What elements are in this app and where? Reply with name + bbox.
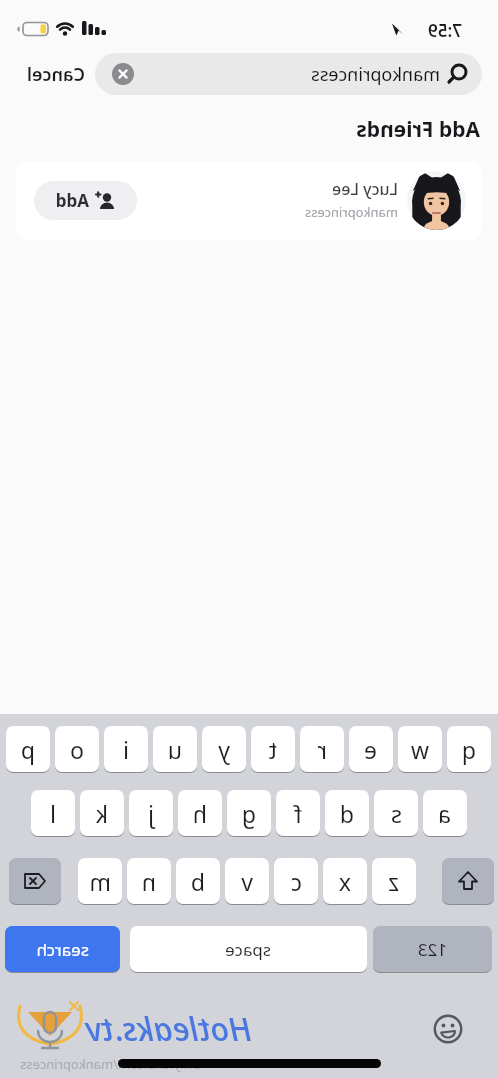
button[interactable]: l [31, 790, 75, 836]
staticText: 7:59 [428, 19, 462, 42]
button[interactable]: o [55, 726, 99, 772]
button[interactable]: Cancel [9, 58, 85, 90]
button[interactable]: n [127, 858, 171, 904]
button[interactable]: space [130, 926, 367, 972]
button[interactable]: search [5, 926, 120, 972]
staticText: Hotleaks.tv [85, 1006, 252, 1051]
button[interactable]: 123 [373, 926, 492, 972]
staticText: j [148, 798, 154, 829]
staticText: y [218, 734, 230, 765]
button[interactable]: w [398, 726, 442, 772]
button[interactable] [442, 858, 494, 904]
button[interactable]: m [78, 858, 122, 904]
staticText: Cancel [26, 62, 85, 87]
button[interactable] [9, 858, 61, 904]
button[interactable]: u [153, 726, 197, 772]
button[interactable]: mankoprincess [95, 53, 482, 95]
button[interactable]: b [176, 858, 220, 904]
button[interactable]: q [447, 726, 491, 772]
staticText: v [241, 866, 253, 897]
button[interactable]: e [349, 726, 393, 772]
staticText: u [167, 734, 182, 765]
staticText: mankoprincess [311, 62, 440, 87]
staticText: p [20, 734, 35, 765]
button[interactable]: r [300, 726, 344, 772]
button[interactable]: t [251, 726, 295, 772]
staticText: r [317, 734, 327, 765]
staticText: l [50, 798, 56, 829]
staticText: q [461, 734, 476, 765]
staticText: s [390, 798, 402, 829]
button[interactable]: Lucy Lee [16, 161, 482, 240]
staticText: h [192, 798, 207, 829]
staticText: k [95, 798, 108, 829]
staticText: x [338, 866, 351, 897]
button[interactable]: j [129, 790, 173, 836]
staticText: m [89, 866, 111, 897]
staticText: t [268, 734, 277, 765]
staticText: c [290, 866, 302, 897]
button[interactable]: y [202, 726, 246, 772]
staticText: Onlyfans.com/mankoprincess [20, 1055, 202, 1073]
button[interactable]: z [372, 858, 416, 904]
staticText: g [241, 798, 256, 829]
button[interactable]: a [423, 790, 467, 836]
button[interactable] [112, 63, 134, 85]
staticText: z [388, 866, 399, 897]
staticText: i [123, 734, 129, 765]
button[interactable]: v [225, 858, 269, 904]
staticText: w [410, 734, 429, 765]
staticText: o [70, 734, 84, 765]
button[interactable]: d [325, 790, 369, 836]
staticText: e [364, 734, 377, 765]
staticText: d [339, 798, 354, 829]
button[interactable]: h [178, 790, 222, 836]
button[interactable]: p [6, 726, 50, 772]
staticText: f [294, 798, 302, 829]
staticText: 123 [417, 938, 447, 961]
staticText: Add [55, 189, 89, 212]
staticText: a [438, 798, 451, 829]
button[interactable]: x [323, 858, 367, 904]
button[interactable]: Add [34, 181, 137, 220]
button[interactable] [433, 1014, 463, 1044]
button[interactable]: s [374, 790, 418, 836]
button[interactable]: i [104, 726, 148, 772]
staticText: space [225, 938, 271, 961]
staticText: search [36, 938, 89, 961]
button[interactable]: f [276, 790, 320, 836]
staticText: n [141, 866, 156, 897]
staticText: Add Friends [356, 115, 480, 144]
staticText: Lucy Lee [332, 178, 398, 200]
staticText: mankoprincess [304, 203, 398, 221]
button[interactable]: g [227, 790, 271, 836]
staticText: b [190, 866, 205, 897]
button[interactable]: c [274, 858, 318, 904]
button[interactable]: k [80, 790, 124, 836]
